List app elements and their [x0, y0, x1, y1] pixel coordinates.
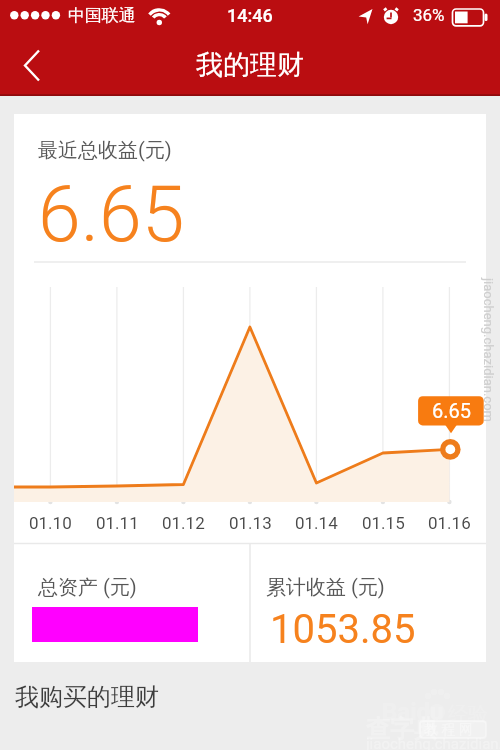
staticText: 6.65 [432, 399, 471, 422]
staticText: 01.15 [362, 513, 405, 533]
staticText: 01.13 [229, 513, 272, 533]
staticText: 最近总收益(元) [38, 138, 172, 163]
staticText: 总资产 (元) [38, 575, 137, 600]
staticText: 01.11 [96, 513, 139, 533]
staticText: 01.14 [295, 513, 338, 533]
staticText: 累计收益 (元) [266, 575, 385, 600]
button[interactable]: 总资产 (元) [14, 544, 250, 662]
staticText: 01.16 [428, 513, 471, 533]
button[interactable] [6, 36, 58, 92]
staticText: 我购买的理财 [15, 682, 159, 712]
staticText: 中国联通 [68, 5, 136, 26]
staticText: 36% [413, 5, 445, 25]
button[interactable]: 累计收益 (元) [250, 544, 486, 662]
staticText: 6.65 [38, 170, 185, 260]
staticText: jiaocheng.chazidian.com [481, 278, 496, 422]
staticText: 01.12 [162, 513, 205, 533]
staticText: 我的理财 [196, 48, 304, 82]
staticText: 14:46 [227, 5, 273, 26]
staticText: 01.10 [29, 513, 72, 533]
staticText: 1053.85 [270, 606, 416, 653]
